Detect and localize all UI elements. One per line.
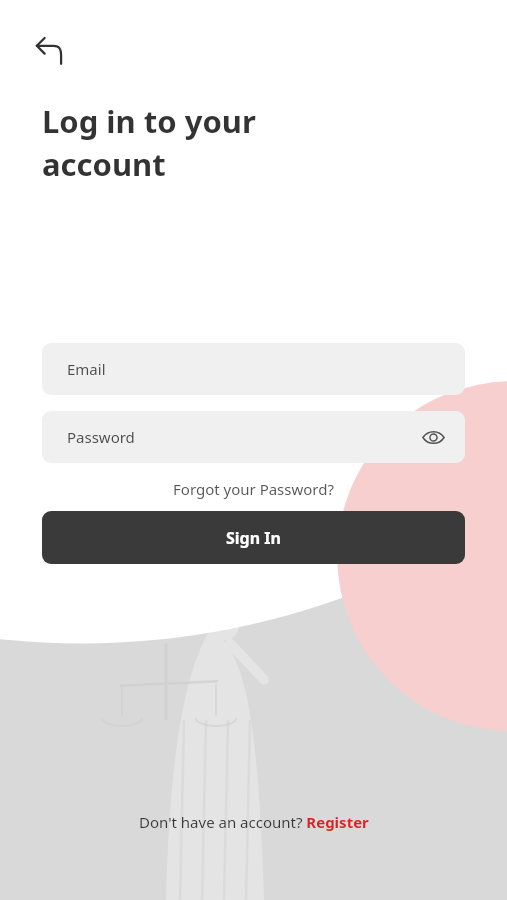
button[interactable]: Forgot your Password? bbox=[163, 476, 344, 502]
staticText: Don't have an account? Register bbox=[139, 812, 369, 832]
button[interactable]: Password bbox=[42, 411, 465, 463]
button[interactable]: Show password bbox=[415, 419, 451, 455]
button[interactable]: Back bbox=[26, 26, 74, 74]
button[interactable]: Sign In bbox=[42, 511, 465, 564]
staticText: Log in to your account bbox=[42, 100, 256, 185]
staticText: Forgot your Password? bbox=[173, 479, 334, 499]
button[interactable]: Email bbox=[42, 343, 465, 395]
staticText: Email bbox=[67, 359, 106, 379]
staticText: Sign In bbox=[226, 527, 281, 549]
button[interactable]: Don't have an account? Register bbox=[131, 808, 377, 836]
staticText: Password bbox=[67, 427, 135, 447]
